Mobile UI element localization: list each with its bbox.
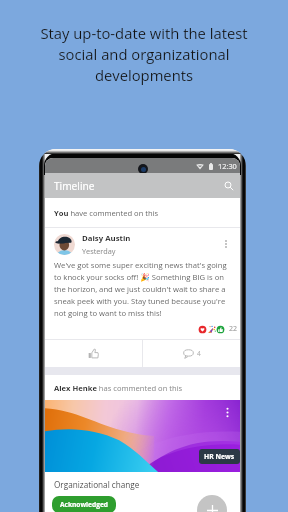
button[interactable]: More options [220,405,234,419]
button[interactable]: Like [45,340,142,367]
staticText: 12:30 [218,161,237,171]
button[interactable]: Search [221,178,236,193]
staticText: Yesterday [82,246,116,256]
staticText: Daisy Austin [82,233,131,244]
staticText: HR News [204,452,235,461]
staticText: Timeline [54,179,95,193]
staticText: Acknowledged [60,500,108,509]
staticText: 22 [229,324,238,334]
staticText: You have commented on this [54,208,159,218]
staticText: 4 [197,349,201,358]
staticText: Organizational change [54,479,140,490]
button[interactable]: 4 [143,340,240,367]
button[interactable]: More options [218,236,234,252]
staticText: We've got some super exciting news that'… [54,260,233,319]
staticText: Alex Henke has commented on this [54,383,183,393]
staticText: Stay up-to-date with the latest social a… [0,23,288,85]
button[interactable]: Acknowledged [52,496,116,512]
button[interactable]: Create post [197,495,227,512]
